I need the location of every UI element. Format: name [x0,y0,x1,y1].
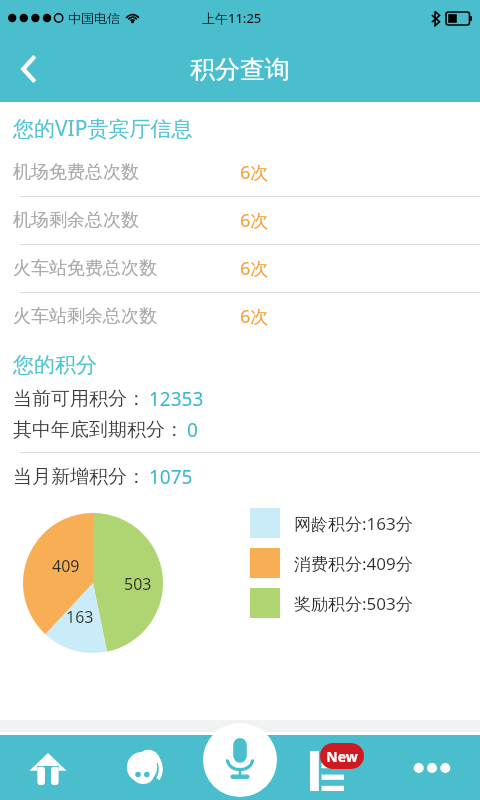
staticText: 当月新增积分： [13,465,146,489]
button[interactable]: 账单 [288,735,384,800]
staticText: 您的VIP贵宾厅信息 [13,114,193,143]
staticText: 163 [66,606,94,628]
staticText: 6次 [240,160,269,185]
button[interactable]: 首页 [0,735,96,800]
button[interactable]: 机场免费总次数 [0,149,480,197]
button[interactable]: 网龄积分:163分 [250,508,413,538]
staticText: 中国电信 [68,10,120,26]
button[interactable]: 奖励积分:503分 [250,588,413,618]
button[interactable]: 火车站免费总次数 [0,245,480,293]
staticText: 火车站剩余总次数 [13,305,157,328]
staticText: 您的积分 [13,352,97,378]
button[interactable]: 消费积分:409分 [250,548,413,578]
staticText: 503 [124,573,152,595]
button[interactable]: 返回 [0,36,58,102]
staticText: 机场免费总次数 [13,161,139,184]
staticText: 上午11:25 [202,9,262,27]
staticText: 409 [52,555,80,577]
button[interactable]: 机场剩余总次数 [0,197,480,245]
staticText: 积分查询 [190,54,290,85]
staticText: 6次 [240,304,269,329]
button[interactable]: 更多 [384,735,480,800]
staticText: 6次 [240,256,269,281]
staticText: 当前可用积分： [13,387,146,411]
staticText: New [326,747,358,766]
button[interactable]: 火车站剩余总次数 [0,293,480,340]
staticText: 消费积分:409分 [294,552,413,575]
staticText: 火车站免费总次数 [13,257,157,280]
staticText: 网龄积分:163分 [294,512,413,535]
staticText: 其中年底到期积分： [13,418,184,442]
button[interactable]: 客服 [96,735,192,800]
staticText: 1075 [149,464,193,490]
staticText: 机场剩余总次数 [13,209,139,232]
button[interactable]: 语音 [203,723,277,797]
staticText: 0 [187,417,198,443]
staticText: 12353 [149,386,204,412]
staticText: 6次 [240,208,269,233]
staticText: 奖励积分:503分 [294,592,413,615]
